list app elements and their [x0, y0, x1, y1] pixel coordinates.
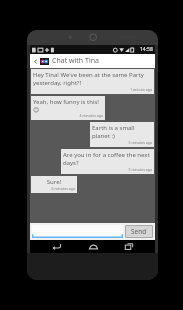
staticText: 6 minutes ago: [33, 186, 75, 191]
staticText: Earth is a small planet :): [92, 124, 152, 140]
button[interactable]: Sure!: [31, 176, 77, 193]
button[interactable]: Hey Tina! We've been at the same Party y…: [31, 69, 154, 94]
staticText: 14:58: [140, 46, 153, 53]
staticText: Hey Tina! We've been at the same Party y…: [33, 71, 152, 87]
button[interactable]: Back: [30, 54, 155, 68]
button[interactable]: Earth is a small planet :): [90, 122, 154, 147]
staticText: Chat with Tina: [52, 56, 99, 66]
button[interactable]: Are you in for a coffee the next days?: [61, 149, 154, 174]
button[interactable]: Recent apps: [118, 240, 140, 253]
button[interactable]: [32, 225, 123, 238]
staticText: Are you in for a coffee the next days?: [63, 151, 152, 167]
staticText: 5 minutes ago: [63, 167, 152, 172]
button[interactable]: Home: [82, 240, 104, 253]
other: Back: [32, 58, 39, 65]
staticText: 1 minute ago: [33, 87, 152, 92]
button[interactable]: Back: [45, 240, 67, 253]
staticText: 4 minutes ago: [33, 113, 103, 118]
staticText: Send: [131, 227, 147, 236]
staticText: 5 minutes ago: [92, 140, 152, 145]
staticText: Sure!: [33, 178, 75, 186]
button[interactable]: Send: [125, 225, 153, 238]
staticText: Yeah, how funny is this! 😊: [33, 98, 103, 113]
button[interactable]: Yeah, how funny is this! 😊: [31, 96, 105, 120]
